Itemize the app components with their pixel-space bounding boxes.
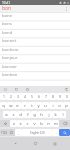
staticText: a [5,112,8,118]
staticText: o [58,103,61,109]
button[interactable]: q [0,102,7,109]
staticText: 4 [24,94,26,99]
staticText: bonjour [2,55,18,61]
button[interactable]: b [38,120,45,127]
staticText: p [65,103,68,109]
staticText: z [13,121,15,127]
button[interactable]: n [45,120,52,127]
button[interactable]: l [59,111,66,118]
button[interactable]: 1 [0,93,7,100]
staticText: q [2,103,5,109]
button[interactable]: c [24,120,31,127]
staticText: x [19,121,22,127]
staticText: i [52,103,54,109]
button[interactable]: s [10,111,17,118]
staticText: 7 [45,94,47,99]
button[interactable]: u [42,102,49,109]
staticText: r [24,103,26,109]
button[interactable]: h [38,111,45,118]
button[interactable]: p [63,102,70,109]
button[interactable]: i [49,102,56,109]
staticText: h [40,112,43,118]
button[interactable]: g [31,111,38,118]
button[interactable]: bonheur [0,46,70,54]
staticText: ?123 [1,131,8,135]
button[interactable]: e [14,102,21,109]
staticText: bonbon [2,72,18,78]
button[interactable]: Settings [22,86,33,92]
button[interactable]: English (US) [22,129,52,136]
staticText: bonsoir [2,64,18,70]
staticText: 2 [10,94,12,99]
button[interactable]: Stickers [11,86,22,92]
button[interactable]: y [35,102,42,109]
staticText: m [54,121,58,127]
button[interactable]: t [28,102,35,109]
button[interactable]: Backspace [59,120,70,127]
button[interactable]: Google [64,87,69,92]
button[interactable]: bons [0,20,70,28]
staticText: j [48,112,50,118]
staticText: l [62,112,64,118]
staticText: bone [2,13,13,19]
button[interactable]: Search [59,129,70,136]
staticText: f [27,112,29,118]
button[interactable]: Emoji [8,129,15,136]
button[interactable]: f [24,111,31,118]
staticText: 3 [17,94,19,99]
button[interactable]: Recent apps [50,139,59,148]
button[interactable]: 6 [35,93,42,100]
staticText: v [33,121,36,127]
button[interactable]: d [17,111,24,118]
button[interactable]: Clipboard [0,86,11,92]
button[interactable]: . [52,129,59,136]
staticText: bond [2,30,13,36]
staticText: bon [2,5,12,12]
button[interactable]: bonjour [0,54,70,62]
staticText: 1 [3,94,5,99]
staticText: 5 [31,94,33,99]
button[interactable]: 7 [42,93,49,100]
button[interactable]: bone [0,12,70,20]
button[interactable]: Home [31,139,40,148]
button[interactable]: bonnet [0,37,70,45]
staticText: u [44,103,47,109]
button[interactable]: o [56,102,63,109]
staticText: t [31,103,33,109]
button[interactable]: z [10,120,17,127]
staticText: 10:41 [2,1,11,5]
button[interactable]: x [17,120,24,127]
button[interactable]: m [52,120,59,127]
staticText: bonheur [2,47,19,53]
button[interactable]: Shift [0,120,10,127]
button[interactable]: Symbols [0,129,8,136]
button[interactable]: bon [0,5,70,12]
button[interactable]: 2 [7,93,14,100]
staticText: c [26,121,29,127]
staticText: s [12,112,15,118]
button[interactable]: 9 [56,93,63,100]
button[interactable]: v [31,120,38,127]
button[interactable]: j [45,111,52,118]
button[interactable]: 0 [63,93,70,100]
button[interactable]: 3 [14,93,21,100]
staticText: English (US) [30,131,45,135]
staticText: 0 [66,94,68,99]
button[interactable]: 5 [28,93,35,100]
staticText: , [18,130,20,136]
button[interactable]: 8 [49,93,56,100]
button[interactable]: bonbon [0,71,70,79]
button[interactable]: r [21,102,28,109]
button[interactable]: , [15,129,22,136]
staticText: 9 [59,94,61,99]
button[interactable]: w [7,102,14,109]
button[interactable]: a [3,111,10,118]
button[interactable]: 4 [21,93,28,100]
staticText: y [37,103,40,109]
button[interactable]: Back [11,139,20,148]
staticText: bons [2,21,12,27]
button[interactable]: More options [62,5,70,12]
button[interactable]: k [52,111,59,118]
button[interactable]: bond [0,29,70,37]
button[interactable]: bonsoir [0,63,70,71]
